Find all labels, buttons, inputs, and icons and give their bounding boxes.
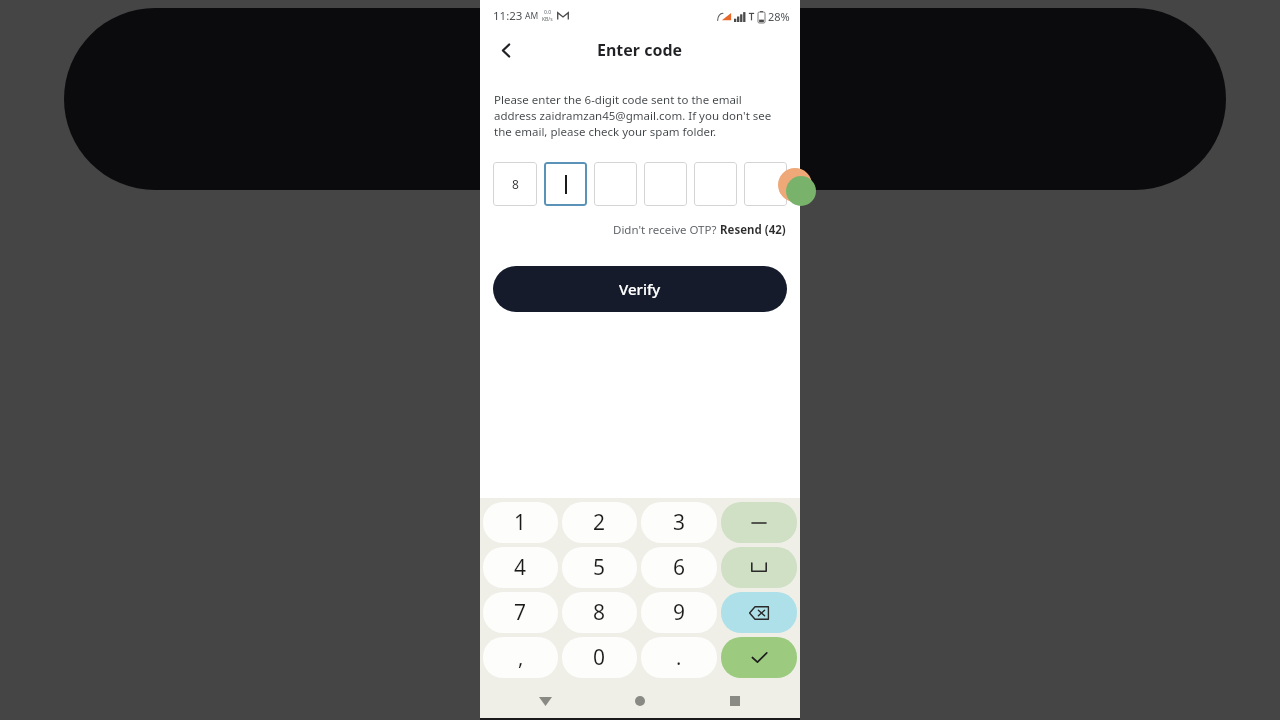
button[interactable] <box>744 162 787 206</box>
staticText: 3 <box>673 508 686 537</box>
staticText: 1 <box>514 508 527 537</box>
button[interactable]: 1 <box>483 502 558 543</box>
button[interactable] <box>644 162 687 206</box>
staticText: 8 <box>512 176 519 192</box>
staticText: 7 <box>514 598 527 627</box>
button[interactable]: 8 <box>493 162 537 206</box>
staticText: 4 <box>514 553 527 582</box>
staticText: 5 <box>593 553 606 582</box>
button[interactable] <box>594 162 637 206</box>
button[interactable]: 3 <box>641 502 717 543</box>
button[interactable]: . <box>641 637 717 678</box>
staticText: 2 <box>593 508 606 537</box>
button[interactable]: 5 <box>562 547 637 588</box>
button[interactable]: Back <box>528 684 562 718</box>
staticText: Please enter the 6-digit code sent to th… <box>494 92 786 140</box>
staticText: Enter code <box>597 39 683 61</box>
button[interactable] <box>544 162 587 206</box>
staticText: 0 <box>593 643 606 672</box>
staticText: 11:23 <box>493 8 523 24</box>
staticText: AM <box>525 10 539 22</box>
button[interactable]: 2 <box>562 502 637 543</box>
button[interactable]: Resend (42) <box>720 222 786 238</box>
button[interactable]: Back <box>488 32 524 68</box>
staticText: . <box>676 644 682 671</box>
button[interactable]: 8 <box>562 592 637 633</box>
button[interactable]: Minus <box>721 502 797 543</box>
button[interactable]: 9 <box>641 592 717 633</box>
staticText: 0.0 <box>544 9 552 16</box>
button[interactable]: 0 <box>562 637 637 678</box>
button[interactable]: Done <box>721 637 797 678</box>
staticText: KB/s <box>542 16 553 23</box>
staticText: 6 <box>673 553 686 582</box>
button[interactable] <box>694 162 737 206</box>
staticText: Resend (42) <box>720 222 786 238</box>
button[interactable]: 6 <box>641 547 717 588</box>
staticText: , <box>518 644 524 671</box>
button[interactable]: Recent apps <box>718 684 752 718</box>
button[interactable]: , <box>483 637 558 678</box>
button[interactable]: 7 <box>483 592 558 633</box>
staticText: 9 <box>673 598 686 627</box>
button[interactable]: Space <box>721 547 797 588</box>
button[interactable]: Backspace <box>721 592 797 633</box>
staticText: Verify <box>619 279 661 299</box>
staticText: 8 <box>593 598 606 627</box>
staticText: Didn't receive OTP? <box>613 222 720 238</box>
button[interactable]: 4 <box>483 547 558 588</box>
button[interactable]: Verify <box>493 266 787 312</box>
staticText: 28% <box>768 9 790 24</box>
button[interactable]: Home <box>623 684 657 718</box>
